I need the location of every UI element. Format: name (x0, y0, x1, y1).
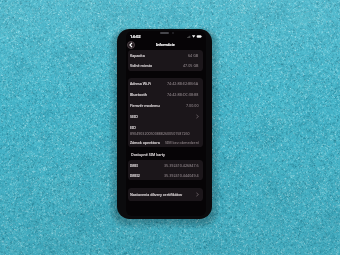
staticText: 74:42:8B:DC:08:88 (167, 92, 199, 97)
button[interactable]: Adresa Wi-Fi (128, 78, 203, 89)
staticText: Nastavenia dôvery certifikátov (130, 192, 183, 197)
button[interactable]: IMEI2 (128, 170, 203, 180)
button[interactable]: Firmvér modemu (128, 100, 203, 111)
button[interactable]: Kapacita (128, 50, 203, 60)
button[interactable]: Zámok operátora (128, 137, 203, 147)
staticText: 89049032005008882600501587260 (130, 131, 190, 136)
button[interactable]: Nastavenia dôvery certifikátov (128, 188, 203, 201)
button[interactable]: Voľné miesto (128, 60, 203, 70)
staticText: Bluetooth (130, 92, 148, 97)
staticText: SIM bez obmedzení (165, 140, 199, 145)
staticText: 35.392410.444049.4 (164, 173, 199, 178)
staticText: Adresa Wi-Fi (130, 81, 152, 86)
button[interactable]: Bluetooth (128, 89, 203, 100)
staticText: 14:02 (130, 34, 141, 40)
staticText: Firmvér modemu (130, 103, 160, 108)
staticText: 35.392410.426847.6 (164, 163, 199, 168)
staticText: IMEI2 (130, 173, 140, 178)
button[interactable]: SEID (128, 111, 203, 122)
staticText: 47.05 GB (183, 63, 199, 68)
staticText: Kapacita (130, 53, 145, 58)
staticText: 74:42:8B:E2:8B:6A (167, 81, 199, 86)
staticText: 64 GB (188, 53, 199, 58)
staticText: Zámok operátora (130, 140, 160, 145)
staticText: Voľné miesto (130, 63, 153, 68)
staticText: Dostupné SIM karty (131, 152, 166, 157)
staticText: EID (130, 125, 136, 130)
button[interactable]: IMEI (128, 160, 203, 170)
staticText: SEID (130, 114, 138, 119)
staticText: Informácie (156, 42, 175, 47)
button[interactable]: EID (128, 122, 203, 137)
button[interactable]: Back (127, 41, 135, 49)
staticText: 7.00.00 (186, 103, 199, 108)
staticText: IMEI (130, 163, 138, 168)
